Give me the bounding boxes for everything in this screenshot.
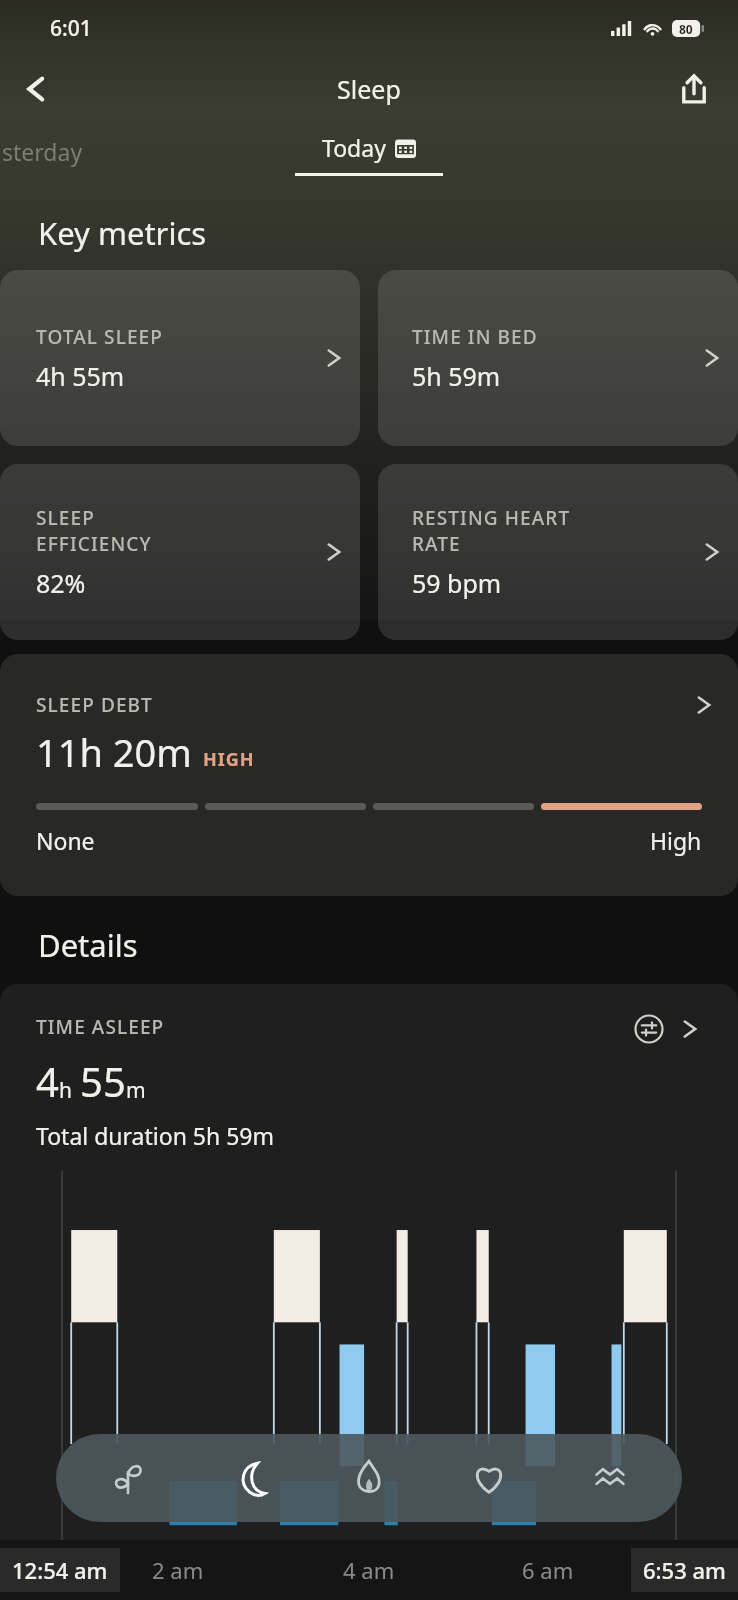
staticText: None [36, 825, 95, 856]
staticText: 6 am [522, 1555, 574, 1585]
button[interactable]: Today [80, 1434, 176, 1522]
button[interactable]: Back [8, 61, 64, 117]
staticText: High [650, 825, 702, 856]
staticText: TIME IN BED [412, 324, 538, 350]
staticText: 59 bpm [412, 566, 502, 600]
staticText: 55 [80, 1054, 126, 1108]
staticText: Sleep [337, 72, 401, 106]
staticText: TOTAL SLEEP [36, 324, 163, 350]
button[interactable]: Heart [441, 1434, 537, 1522]
staticText: 4 am [343, 1555, 395, 1585]
staticText: Details [38, 924, 138, 966]
staticText: RESTING HEART RATE [412, 505, 571, 557]
staticText: 11h 20m [36, 726, 192, 778]
button[interactable]: TIME IN BED [378, 270, 738, 446]
button[interactable]: sterday [2, 136, 83, 167]
staticText: Today [322, 132, 386, 163]
staticText: 80 [679, 21, 693, 37]
staticText: Total duration 5h 59m [36, 1120, 275, 1151]
button[interactable]: Share [666, 61, 722, 117]
staticText: SLEEP DEBT [36, 692, 153, 718]
staticText: 6:01 [50, 14, 92, 43]
staticText: 2 am [152, 1555, 204, 1585]
button[interactable]: Today [314, 128, 424, 167]
button[interactable]: TOTAL SLEEP [0, 270, 360, 446]
button[interactable]: TIME ASLEEP [36, 1014, 702, 1044]
button[interactable]: Sleep [201, 1434, 297, 1522]
staticText: 12:54 am [12, 1555, 108, 1585]
staticText: 4 [36, 1054, 59, 1108]
button[interactable]: Energy [321, 1434, 417, 1522]
button[interactable]: SLEEP EFFICIENCY [0, 464, 360, 640]
other: Adjust [634, 1014, 664, 1044]
staticText: SLEEP EFFICIENCY [36, 505, 152, 557]
staticText: 82% [36, 566, 86, 600]
button[interactable]: SLEEP DEBT [0, 654, 738, 896]
staticText: 4h 55m [36, 359, 125, 393]
staticText: Key metrics [38, 212, 207, 254]
staticText: h [59, 1076, 72, 1105]
staticText: 6:53 am [643, 1555, 726, 1585]
button[interactable]: RESTING HEART RATE [378, 464, 738, 640]
button[interactable]: Trends [562, 1434, 658, 1522]
staticText: TIME ASLEEP [36, 1014, 165, 1040]
staticText: m [126, 1076, 146, 1105]
staticText: 5h 59m [412, 359, 501, 393]
staticText: HIGH [203, 747, 255, 772]
